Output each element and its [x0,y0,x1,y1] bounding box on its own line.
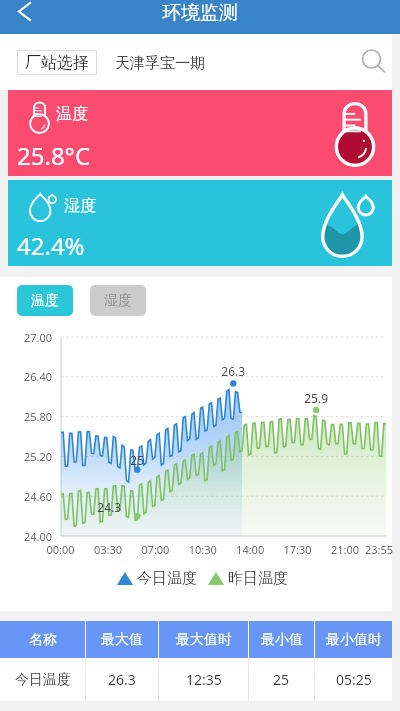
staticText: 厂站选择 [25,53,89,73]
staticText: 12:35 [186,670,222,689]
staticText: 昨日温度 [228,569,288,588]
staticText: 最小值 [261,631,303,649]
staticText: 05:25 [336,670,372,689]
staticText: 温度 [56,104,88,124]
button[interactable]: 温度 [8,90,392,176]
staticText: 25.8°C [17,139,91,172]
staticText: 天津孚宝一期 [115,54,205,73]
button[interactable]: 厂站选择 [17,50,97,75]
staticText: 今日温度 [15,671,71,689]
button[interactable]: 湿度 [8,180,392,266]
staticText: 名称 [29,631,57,649]
button[interactable]: Back [0,0,46,34]
staticText: 今日温度 [137,569,197,588]
staticText: 26.3 [108,670,136,689]
button[interactable]: 温度 [17,285,73,316]
staticText: 湿度 [64,196,96,216]
staticText: 温度 [31,292,59,310]
staticText: 湿度 [104,292,132,310]
staticText: 最大值时 [176,631,232,649]
staticText: 最小值时 [326,631,382,649]
button[interactable]: 湿度 [90,285,146,316]
staticText: 25 [273,670,290,689]
button[interactable]: Search [358,45,392,79]
staticText: 42.4% [17,229,85,262]
staticText: 环境监测 [162,1,238,25]
staticText: 最大值 [101,631,143,649]
